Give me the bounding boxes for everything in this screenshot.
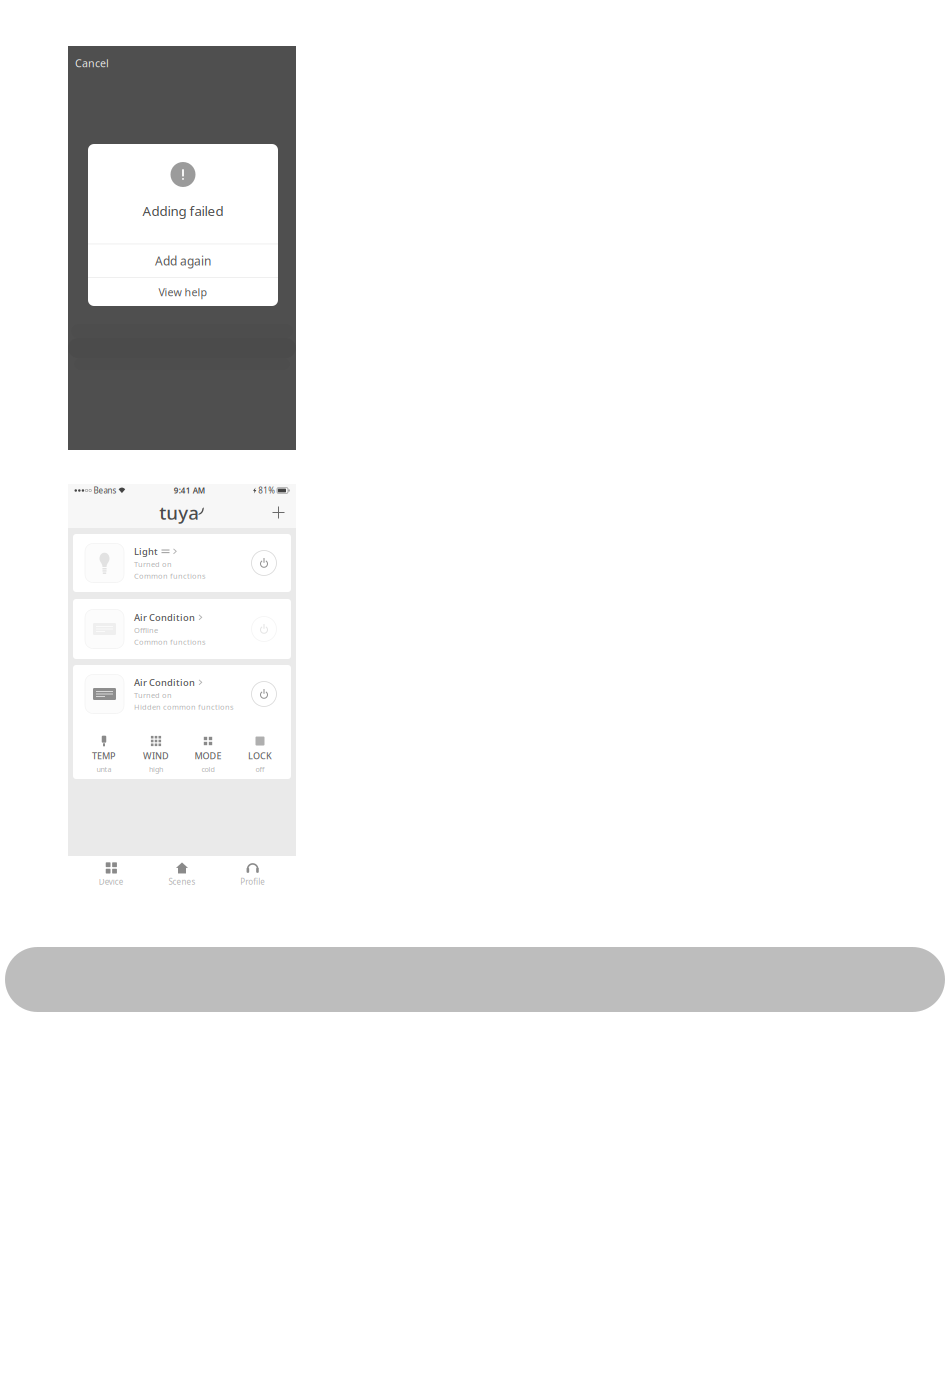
staticText: Air Condition: [134, 611, 195, 623]
button[interactable]: MODE: [182, 731, 234, 778]
staticText: Common functions: [134, 637, 206, 647]
button[interactable]: LOCK: [234, 731, 286, 778]
button[interactable]: Light: [73, 534, 291, 592]
staticText: 9:41 AM: [174, 485, 205, 496]
staticText: View help: [158, 285, 207, 299]
staticText: TEMP: [92, 749, 116, 762]
button[interactable]: Power: [249, 614, 279, 644]
button[interactable]: Add again: [88, 244, 278, 277]
button[interactable]: Air Condition: [73, 665, 291, 723]
button[interactable]: WIND: [130, 731, 182, 778]
staticText: Common functions: [134, 571, 206, 581]
staticText: WIND: [143, 749, 169, 762]
button[interactable]: Device: [76, 855, 147, 892]
staticText: Offline: [134, 625, 158, 635]
staticText: Cancel: [75, 56, 109, 70]
staticText: Turned on: [134, 559, 172, 569]
staticText: Beans: [93, 485, 116, 496]
button[interactable]: Add device: [267, 502, 290, 523]
staticText: Adding failed: [142, 202, 223, 220]
button[interactable]: Profile: [217, 855, 288, 892]
staticText: tuya: [159, 500, 199, 525]
button[interactable]: TEMP: [78, 731, 130, 778]
staticText: cold: [201, 764, 214, 774]
staticText: Profile: [240, 876, 265, 887]
staticText: off: [255, 764, 264, 774]
staticText: Air Condition: [134, 676, 195, 688]
button[interactable]: Scenes: [147, 855, 217, 892]
staticText: MODE: [194, 749, 221, 762]
staticText: Light: [134, 545, 158, 557]
button[interactable]: Turn off: [249, 548, 279, 578]
staticText: 81%: [258, 485, 275, 496]
staticText: Turned on: [134, 690, 172, 700]
staticText: Add again: [155, 253, 211, 269]
staticText: LOCK: [248, 749, 272, 762]
staticText: high: [149, 764, 163, 774]
staticText: Device: [99, 876, 124, 887]
staticText: Hidden common functions: [134, 702, 234, 712]
button[interactable]: Turn off: [249, 679, 279, 709]
button[interactable]: View help: [88, 278, 278, 306]
button[interactable]: Air Condition: [73, 599, 291, 659]
staticText: unta: [96, 764, 111, 774]
button[interactable]: Cancel: [69, 52, 115, 74]
staticText: Scenes: [168, 876, 195, 887]
